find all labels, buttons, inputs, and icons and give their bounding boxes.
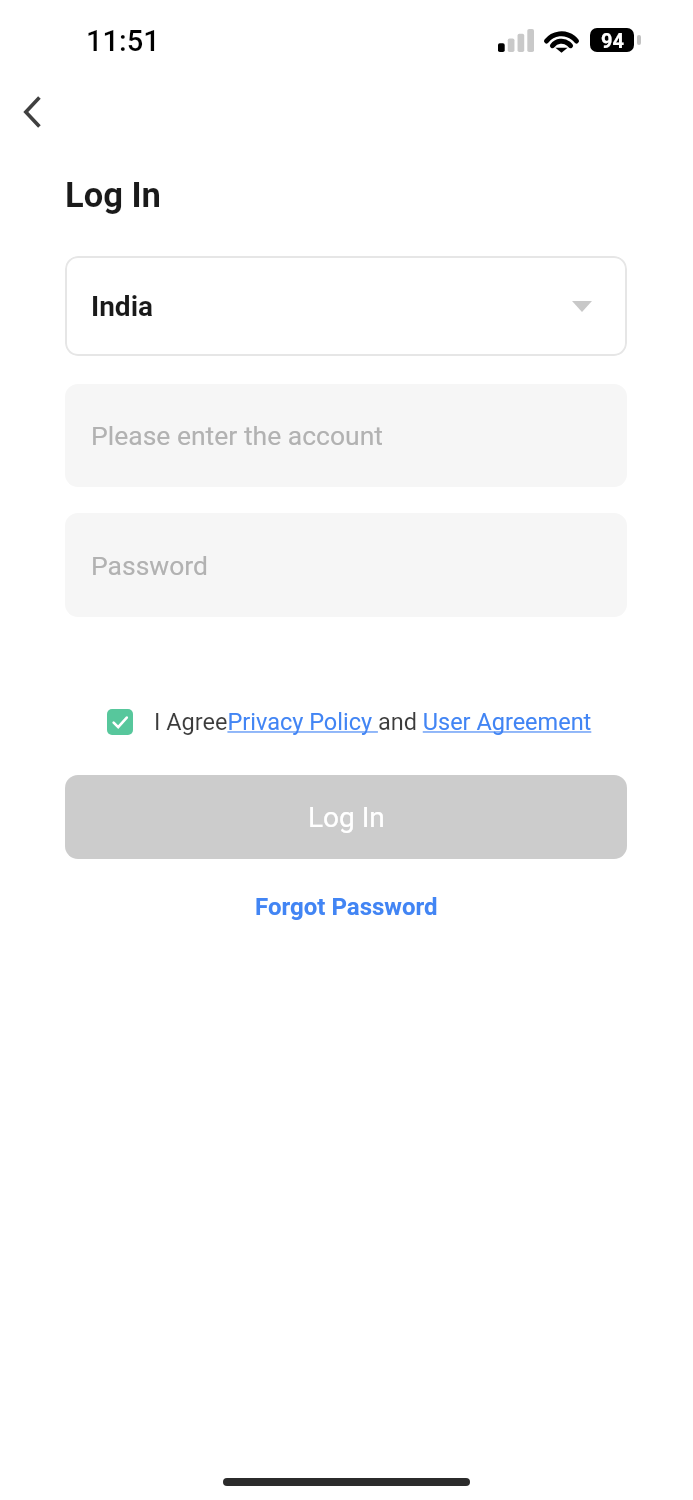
button[interactable]: I AgreePrivacy Policy and User Agreement <box>154 708 592 736</box>
staticText: 94 <box>601 29 624 52</box>
staticText: 11:51 <box>86 24 160 58</box>
button[interactable]: Forgot Password <box>245 889 448 925</box>
staticText: Log In <box>308 801 385 834</box>
button[interactable]: I agree checkbox, checked <box>107 709 133 735</box>
button[interactable]: Back <box>6 86 58 138</box>
staticText: Password <box>91 550 209 581</box>
staticText: Please enter the account <box>91 420 383 451</box>
button[interactable]: Please enter the account <box>65 384 627 487</box>
staticText: Log In <box>65 175 161 215</box>
staticText: India <box>91 290 154 323</box>
button[interactable]: Log In <box>65 775 627 859</box>
button[interactable]: India <box>65 256 627 356</box>
button[interactable]: Password <box>65 513 627 617</box>
